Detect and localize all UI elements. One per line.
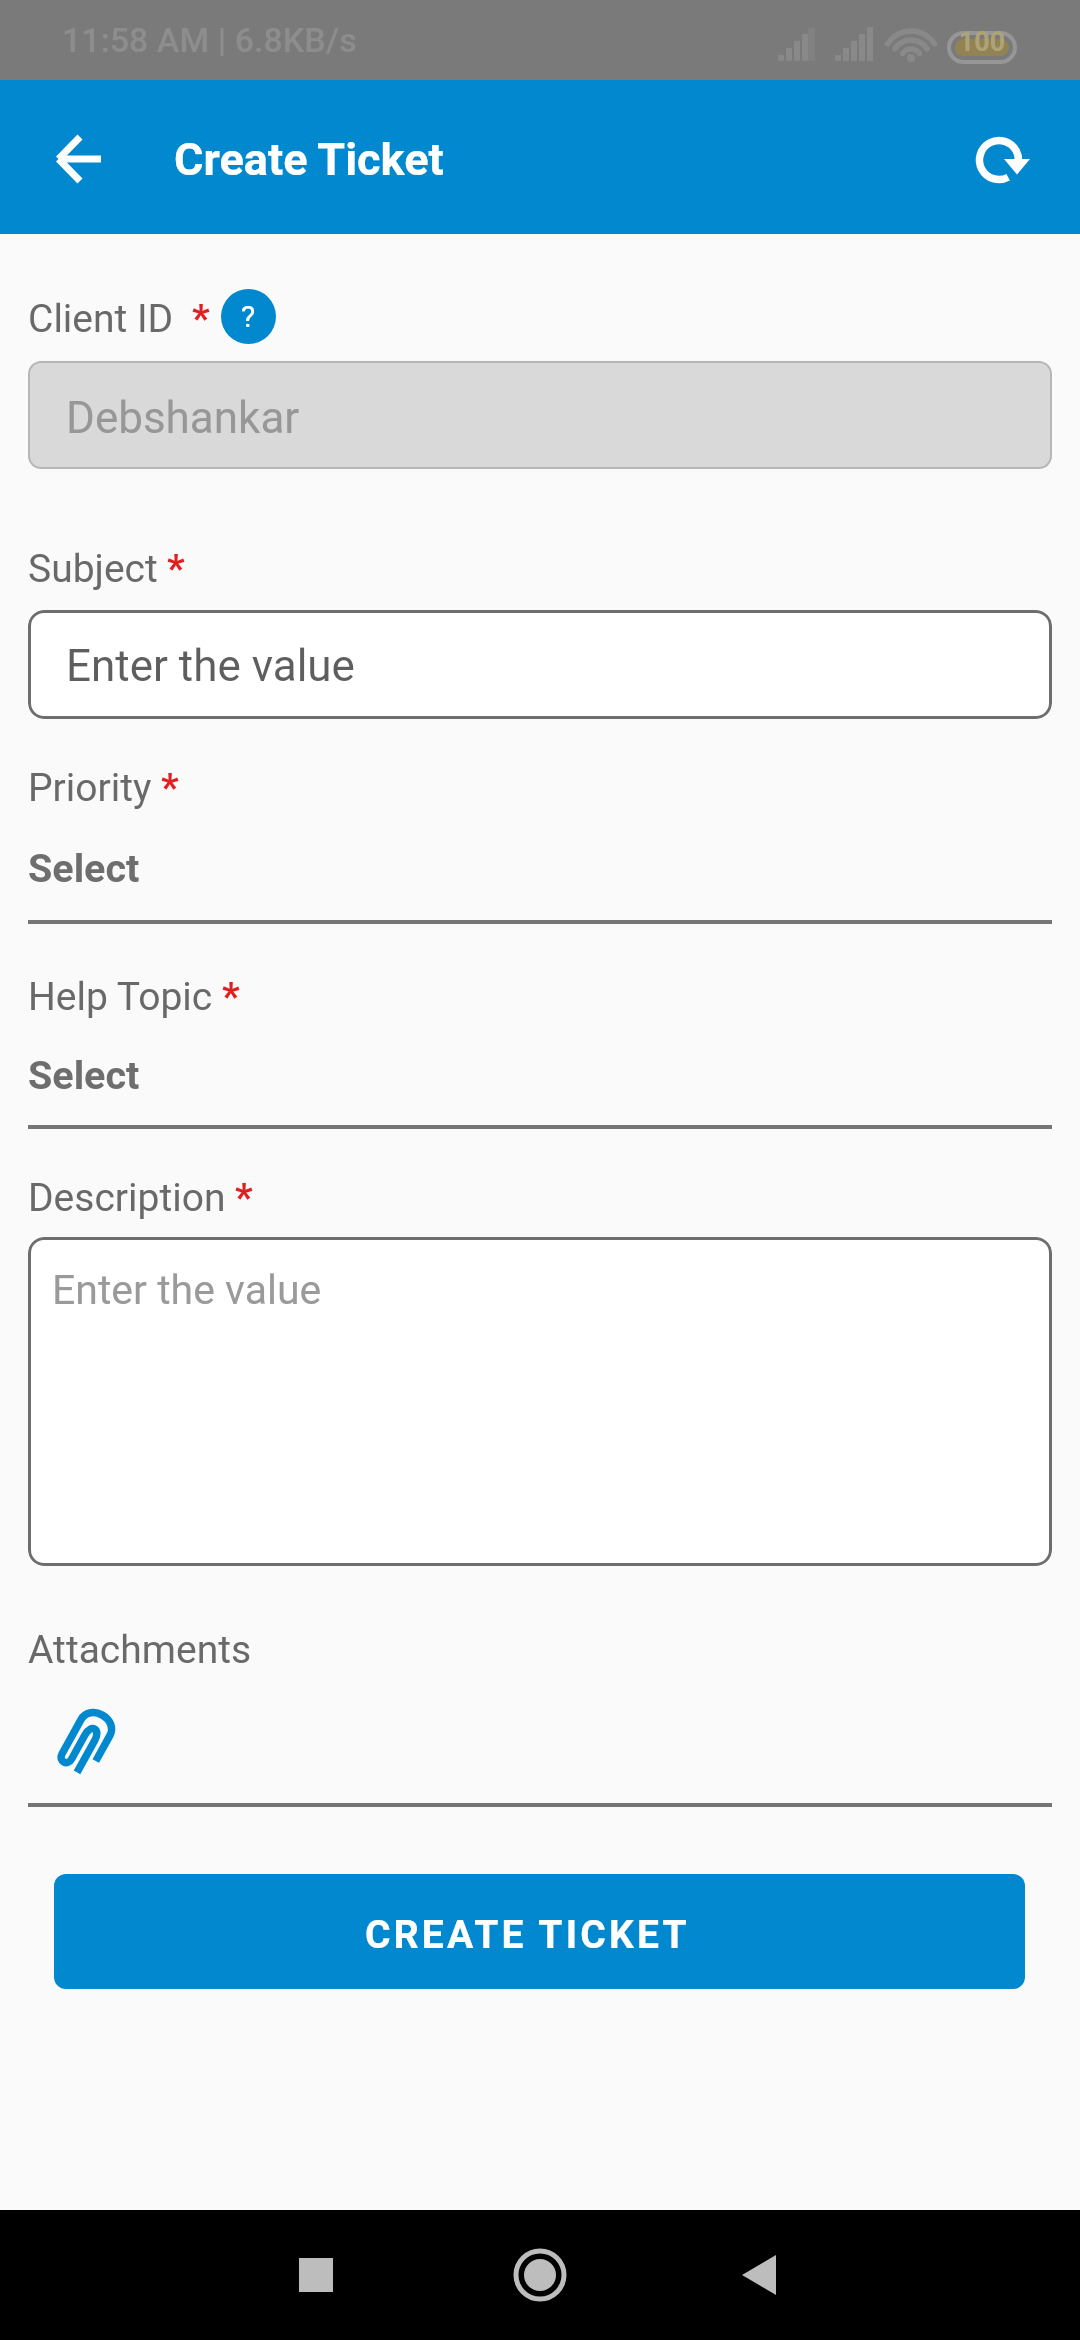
staticText: Description: [28, 1175, 226, 1221]
button[interactable]: Back: [724, 2240, 794, 2310]
staticText: Select: [28, 845, 140, 891]
staticText: *: [222, 974, 240, 1020]
staticText: 11:58 AM | 6.8KB/s: [62, 20, 357, 60]
staticText: ?: [241, 299, 256, 334]
button[interactable]: Back: [34, 113, 122, 201]
staticText: CREATE TICKET: [365, 1912, 690, 1958]
staticText: Debshankar: [66, 392, 300, 444]
button[interactable]: CREATE TICKET: [54, 1874, 1025, 1989]
staticText: 100: [957, 26, 1007, 58]
staticText: Select: [28, 1052, 140, 1098]
button[interactable]: Attach file: [42, 1695, 134, 1787]
button[interactable]: Help: [221, 289, 276, 344]
staticText: Attachments: [28, 1627, 252, 1673]
staticText: Help Topic: [28, 974, 213, 1020]
button[interactable]: Enter the value: [28, 610, 1052, 719]
staticText: Create Ticket: [174, 133, 444, 186]
button[interactable]: Debshankar: [28, 361, 1052, 469]
staticText: *: [192, 296, 210, 342]
staticText: Subject: [28, 546, 158, 592]
staticText: Priority: [28, 765, 152, 811]
button[interactable]: Select: [28, 843, 1052, 909]
button[interactable]: Enter the value: [28, 1237, 1052, 1566]
staticText: *: [161, 765, 179, 811]
button[interactable]: Recents: [281, 2240, 351, 2310]
staticText: Enter the value: [52, 1266, 322, 1314]
button[interactable]: Refresh: [959, 113, 1047, 201]
staticText: *: [235, 1175, 253, 1221]
staticText: *: [167, 546, 185, 592]
button[interactable]: Select: [28, 1050, 1052, 1116]
staticText: Client ID: [28, 296, 183, 342]
button[interactable]: Home: [505, 2240, 575, 2310]
staticText: Enter the value: [66, 640, 355, 692]
